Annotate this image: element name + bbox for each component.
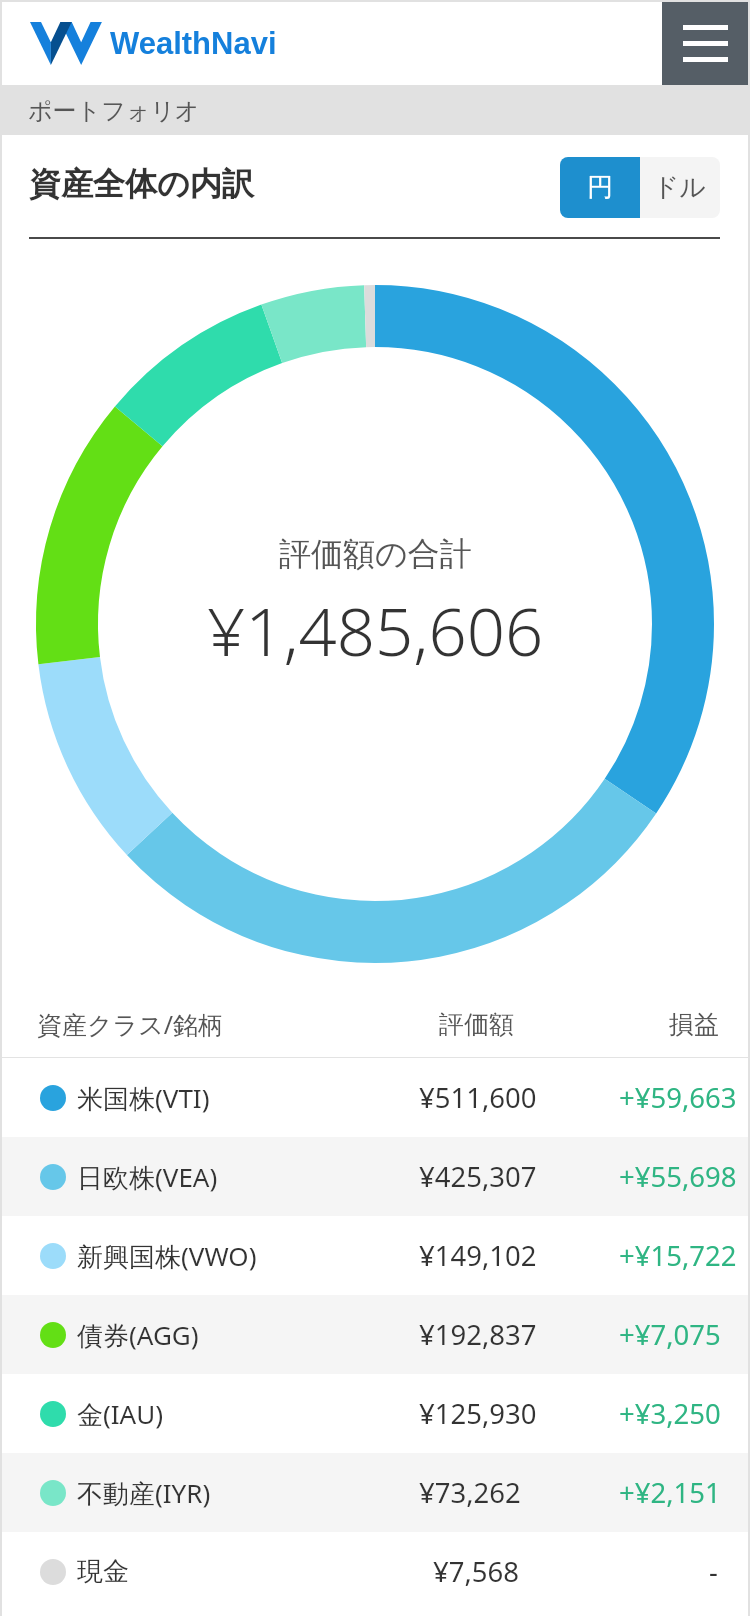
button[interactable]: 円 [560, 157, 640, 218]
button[interactable]: 現金 [2, 1532, 748, 1611]
staticText: ポートフォリオ [28, 96, 200, 126]
button[interactable]: 金(IAU) [2, 1374, 748, 1453]
staticText: 日欧株(VEA) [77, 1159, 218, 1195]
button[interactable]: 債券(AGG) [2, 1295, 748, 1374]
staticText: 評価額 [439, 1009, 514, 1040]
staticText: 金(IAU) [77, 1396, 164, 1432]
staticText: 現金 [77, 1555, 129, 1588]
staticText: +¥7,075 [619, 1316, 721, 1353]
staticText: ¥425,307 [419, 1158, 537, 1195]
staticText: ¥73,262 [419, 1474, 521, 1511]
button[interactable]: 不動産(IYR) [2, 1453, 748, 1532]
staticText: 損益 [669, 1009, 719, 1040]
staticText: 円 [587, 171, 613, 204]
staticText: ¥149,102 [419, 1237, 537, 1274]
staticText: ¥511,600 [419, 1079, 537, 1116]
button[interactable]: 日欧株(VEA) [2, 1137, 748, 1216]
button[interactable]: 新興国株(VWO) [2, 1216, 748, 1295]
staticText: ¥192,837 [419, 1316, 537, 1353]
button[interactable]: 米国株(VTI) [2, 1058, 748, 1137]
staticText: ドル [653, 171, 707, 204]
staticText: 新興国株(VWO) [77, 1238, 257, 1274]
staticText: 評価額の合計 [279, 534, 472, 574]
button[interactable]: Menu [662, 2, 748, 85]
staticText: 資産クラス/銘柄 [37, 1007, 224, 1041]
staticText: +¥55,698 [619, 1158, 737, 1195]
staticText: ¥125,930 [419, 1395, 537, 1432]
staticText: +¥59,663 [619, 1079, 737, 1116]
staticText: 米国株(VTI) [77, 1080, 210, 1116]
staticText: - [709, 1553, 718, 1590]
staticText: +¥2,151 [619, 1474, 721, 1511]
staticText: ¥7,568 [433, 1553, 520, 1590]
staticText: 不動産(IYR) [77, 1475, 211, 1511]
staticText: +¥3,250 [619, 1395, 721, 1432]
staticText: ¥1,485,606 [207, 584, 544, 675]
staticText: WealthNavi [110, 26, 277, 61]
staticText: 資産全体の内訳 [29, 164, 254, 204]
staticText: +¥15,722 [619, 1237, 737, 1274]
button[interactable]: ドル [640, 157, 720, 218]
staticText: 債券(AGG) [77, 1317, 199, 1353]
